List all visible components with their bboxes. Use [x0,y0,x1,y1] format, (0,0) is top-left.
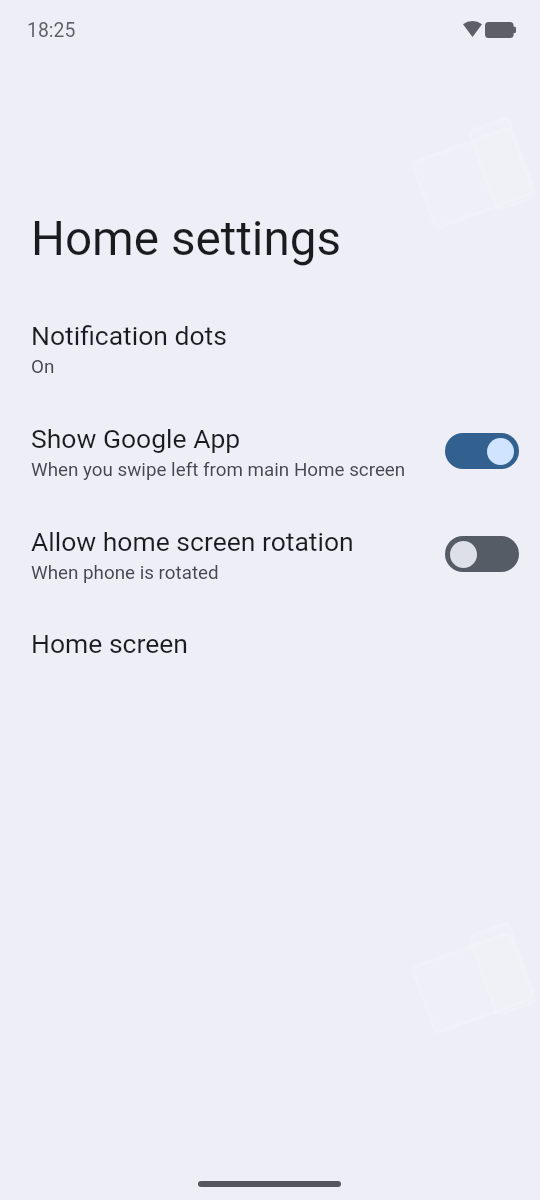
staticText: When phone is rotated [31,562,219,584]
button[interactable]: Notification dots [0,314,540,404]
button[interactable]: Toggle, on [445,433,519,469]
staticText: Allow home screen rotation [31,526,354,557]
button[interactable]: Show Google App [0,417,540,507]
other: Wi-Fi [463,21,482,37]
button[interactable]: Toggle, off [445,536,519,572]
staticText: Home settings [31,211,341,267]
staticText: On [31,356,55,378]
staticText: Notification dots [31,320,227,351]
staticText: 18:25 [27,19,76,42]
staticText: When you swipe left from main Home scree… [31,459,406,481]
button[interactable]: Allow home screen rotation [0,520,540,610]
other: Battery [485,22,516,38]
staticText: Home screen [31,628,188,659]
button[interactable]: Home screen [0,622,540,678]
staticText: Show Google App [31,423,241,454]
